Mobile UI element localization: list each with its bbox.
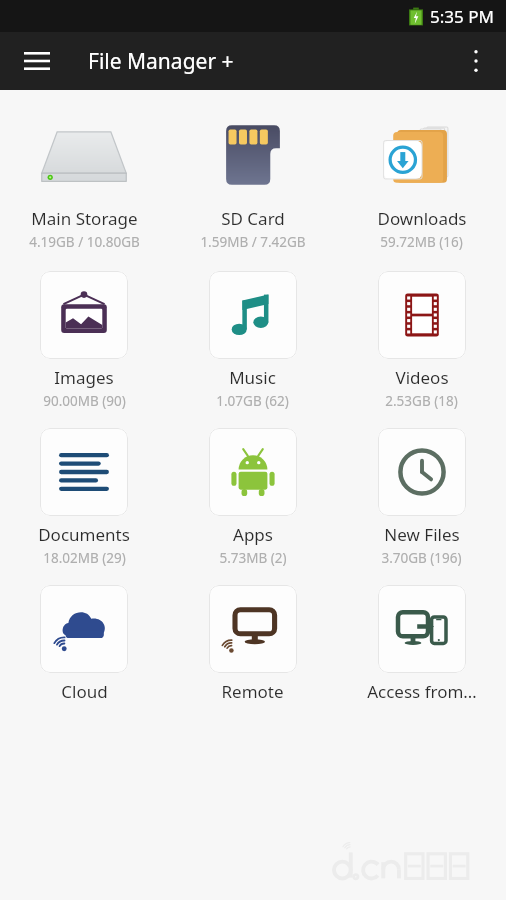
button[interactable]: New Files	[337, 428, 506, 567]
staticText: SD Card	[221, 207, 285, 230]
staticText: 5.73MB (2)	[219, 549, 287, 567]
staticText: 3.70GB (196)	[381, 549, 462, 567]
staticText: 59.72MB (16)	[380, 233, 463, 251]
button[interactable]: Images	[0, 271, 168, 410]
button[interactable]: Videos	[337, 271, 506, 410]
button[interactable]: Music	[168, 271, 337, 410]
staticText: New Files	[384, 523, 460, 546]
button[interactable]: Documents	[0, 428, 168, 567]
button[interactable]: SD Card	[168, 104, 337, 253]
staticText: Access from…	[367, 680, 477, 703]
staticText: 2.53GB (18)	[385, 392, 458, 410]
staticText: 18.02MB (29)	[43, 549, 126, 567]
staticText: Documents	[38, 523, 130, 546]
staticText: Apps	[233, 523, 273, 546]
staticText: 4.19GB / 10.80GB	[29, 233, 140, 251]
button[interactable]: Downloads	[337, 104, 506, 253]
button[interactable]: Open navigation menu	[14, 38, 60, 84]
staticText: File Manager +	[88, 47, 234, 76]
button[interactable]: More options	[454, 39, 498, 83]
staticText: 1.07GB (62)	[216, 392, 289, 410]
staticText: Downloads	[377, 207, 467, 230]
button[interactable]: Main Storage	[0, 104, 168, 253]
button[interactable]: Remote	[168, 585, 337, 703]
staticText: Main Storage	[31, 207, 138, 230]
staticText: Remote	[221, 680, 284, 703]
staticText: 5:35 PM	[430, 5, 494, 28]
staticText: Videos	[395, 366, 449, 389]
staticText: 1.59MB / 7.42GB	[200, 233, 306, 251]
staticText: Images	[54, 366, 114, 389]
staticText: 90.00MB (90)	[43, 392, 126, 410]
staticText: Music	[229, 366, 276, 389]
button[interactable]: Cloud	[0, 585, 168, 703]
staticText: Cloud	[61, 680, 108, 703]
button[interactable]: Apps	[168, 428, 337, 567]
button[interactable]: Access from…	[337, 585, 506, 703]
